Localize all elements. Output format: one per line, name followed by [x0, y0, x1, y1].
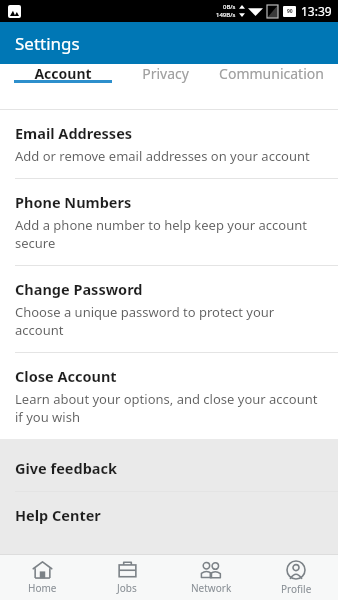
staticText: Profile	[281, 582, 312, 596]
button[interactable]: Change Password	[0, 266, 338, 352]
staticText: Email Addresses	[15, 123, 133, 143]
staticText: Choose a unique password to protect your…	[15, 303, 320, 339]
staticText: 90	[287, 8, 293, 15]
staticText: Change Password	[15, 279, 143, 299]
button[interactable]: Jobs	[85, 555, 169, 600]
button[interactable]: Privacy	[126, 64, 204, 83]
staticText: Communication	[219, 64, 324, 83]
staticText: Privacy	[142, 64, 189, 83]
button[interactable]: Communication	[204, 64, 338, 83]
staticText: Close Account	[15, 366, 117, 386]
button[interactable]: Account	[0, 64, 126, 83]
staticText: 13:39	[301, 3, 332, 19]
staticText: Home	[28, 581, 57, 595]
staticText: Phone Numbers	[15, 192, 132, 212]
staticText: Help Center	[15, 505, 101, 525]
button[interactable]: Network	[169, 555, 253, 600]
staticText: 149B/s	[216, 11, 236, 19]
button[interactable]: Help Center	[0, 492, 338, 538]
button[interactable]: Give feedback	[0, 445, 338, 491]
staticText: 0B/s	[223, 3, 236, 11]
staticText: Network	[191, 581, 232, 595]
button[interactable]: Phone Numbers	[0, 179, 338, 265]
staticText: Jobs	[117, 581, 137, 595]
staticText: Learn about your options, and close your…	[15, 390, 320, 426]
staticText: Add or remove email addresses on your ac…	[15, 147, 310, 165]
button[interactable]: Home	[0, 555, 84, 600]
button[interactable]: Profile	[254, 555, 338, 600]
staticText: Give feedback	[15, 458, 117, 478]
staticText: Account	[34, 64, 92, 83]
button[interactable]: Email Addresses	[0, 110, 338, 178]
staticText: Settings	[15, 32, 80, 55]
staticText: Add a phone number to help keep your acc…	[15, 216, 320, 252]
button[interactable]: Close Account	[0, 353, 338, 439]
